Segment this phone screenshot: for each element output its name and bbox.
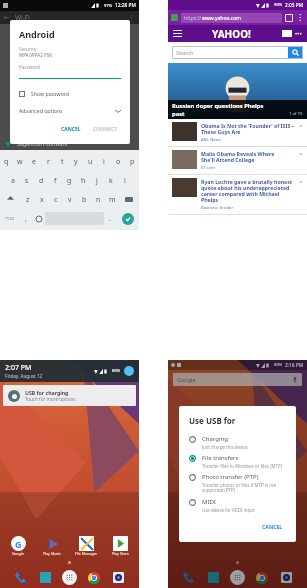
staticText: Business Insider	[201, 205, 234, 211]
staticText: 2:05 PM	[285, 2, 304, 9]
button[interactable]: Camera	[111, 570, 126, 585]
button[interactable]: Malia Obama Reveals Where She'll Attend …	[168, 147, 307, 174]
button[interactable]: e	[27, 152, 41, 171]
button[interactable]: Play Music	[203, 536, 237, 556]
button[interactable]: g	[62, 171, 76, 190]
button[interactable]: https://	[181, 13, 282, 23]
button[interactable]: CANCEL	[58, 123, 84, 136]
button[interactable]: y	[69, 152, 83, 171]
button[interactable]: Dismiss	[299, 150, 303, 158]
button[interactable]: Advanced options	[19, 107, 121, 114]
button[interactable]: Backspace	[119, 190, 139, 209]
button[interactable]: Ryan Lochte gave a brutally honest quote…	[168, 175, 307, 214]
button[interactable]: a	[6, 171, 20, 190]
button[interactable]: CANCEL	[259, 520, 286, 533]
staticText: CANCEL	[61, 126, 81, 133]
button[interactable]: ,	[20, 209, 32, 228]
button[interactable]: r	[41, 152, 55, 171]
button[interactable]: Sagemcom-Software	[0, 137, 139, 150]
button[interactable]: u	[83, 152, 97, 171]
button[interactable]: Camera	[279, 570, 294, 585]
button[interactable]: v	[63, 190, 77, 209]
button[interactable]: File Manager	[69, 536, 103, 556]
staticText: y	[74, 157, 78, 167]
staticText: Wi-Fi	[15, 13, 30, 22]
button[interactable]: Tabs	[285, 14, 293, 22]
button[interactable]: w	[13, 152, 27, 171]
button[interactable]: Menu	[173, 30, 182, 37]
button[interactable]: More	[295, 30, 302, 38]
button[interactable]: Russian doper questions Phelps past	[168, 63, 307, 119]
staticText: 80%	[112, 368, 121, 374]
button[interactable]: l	[118, 171, 132, 190]
button[interactable]: m	[105, 190, 119, 209]
button[interactable]: z	[21, 190, 35, 209]
button[interactable]: More options	[128, 14, 135, 22]
staticText: Google	[12, 551, 25, 556]
button[interactable]: Change language	[32, 209, 45, 228]
button[interactable]: f	[48, 171, 62, 190]
staticText: File Manager	[75, 551, 97, 556]
button[interactable]: o	[111, 152, 125, 171]
button[interactable]: k	[104, 171, 118, 190]
button[interactable]: User profile	[124, 366, 134, 376]
staticText: x	[40, 195, 44, 205]
staticText: Touch for more options.	[25, 396, 77, 402]
button[interactable]: MIDI	[189, 496, 286, 515]
staticText: ×	[299, 178, 303, 186]
staticText: Obama Is Not the 'Founder' of ISIS – The…	[201, 122, 295, 136]
button[interactable]: USB for charging	[3, 385, 136, 406]
button[interactable]: File transfers	[189, 452, 286, 471]
button[interactable]: Search	[172, 46, 303, 59]
button[interactable]: Dismiss	[299, 178, 303, 186]
staticText: Advanced options	[19, 107, 63, 114]
button[interactable]: All apps	[230, 570, 245, 585]
button[interactable]: d	[34, 171, 48, 190]
button[interactable]: More options	[296, 13, 304, 22]
button[interactable]: Enter	[116, 209, 139, 228]
button[interactable]: Chrome	[86, 570, 101, 585]
staticText: g	[67, 176, 72, 186]
button[interactable]: Photo transfer (PTP)	[189, 471, 286, 496]
button[interactable]: Messages	[206, 570, 221, 585]
button[interactable]: Shift	[0, 190, 21, 209]
button[interactable]: b	[77, 190, 91, 209]
button[interactable]: .	[104, 209, 116, 228]
button[interactable]: j	[90, 171, 104, 190]
staticText: Sagemcom-Software	[17, 140, 68, 147]
button[interactable]: c	[49, 190, 63, 209]
button[interactable]: p	[125, 152, 139, 171]
button[interactable]: Phone	[13, 570, 28, 585]
button[interactable]: Google	[173, 373, 302, 386]
button[interactable]: All apps	[62, 570, 77, 585]
button[interactable]: s	[20, 171, 34, 190]
staticText: ×	[299, 122, 303, 130]
staticText: r	[47, 157, 50, 167]
button[interactable]: ?123	[0, 209, 20, 228]
button[interactable]: i	[97, 152, 111, 171]
button[interactable]: Show password	[19, 90, 121, 97]
button[interactable]: h	[76, 171, 90, 190]
button[interactable]: t	[55, 152, 69, 171]
button[interactable]: Chrome	[254, 570, 269, 585]
button[interactable]: Play Music	[35, 536, 69, 556]
button[interactable]: Play Store	[271, 536, 305, 556]
button[interactable]: x	[35, 190, 49, 209]
button[interactable]: Charging	[189, 433, 286, 452]
button[interactable]: Phone	[181, 570, 196, 585]
button[interactable]: Google	[170, 536, 203, 556]
staticText: 90%	[274, 2, 283, 8]
button[interactable]: Play Store	[103, 536, 137, 556]
button[interactable]: CONNECT	[90, 123, 121, 136]
button[interactable]: q	[0, 152, 13, 171]
button[interactable]: Search	[288, 46, 303, 59]
button[interactable]: n	[91, 190, 105, 209]
button[interactable]: Messages	[38, 570, 53, 585]
button[interactable]: Dismiss	[299, 122, 303, 130]
button[interactable]: Obama Is Not the 'Founder' of ISIS – The…	[168, 119, 307, 146]
button[interactable]: Back	[4, 14, 10, 22]
button[interactable]: G	[2, 536, 35, 556]
button[interactable]: File Manager	[237, 536, 271, 556]
